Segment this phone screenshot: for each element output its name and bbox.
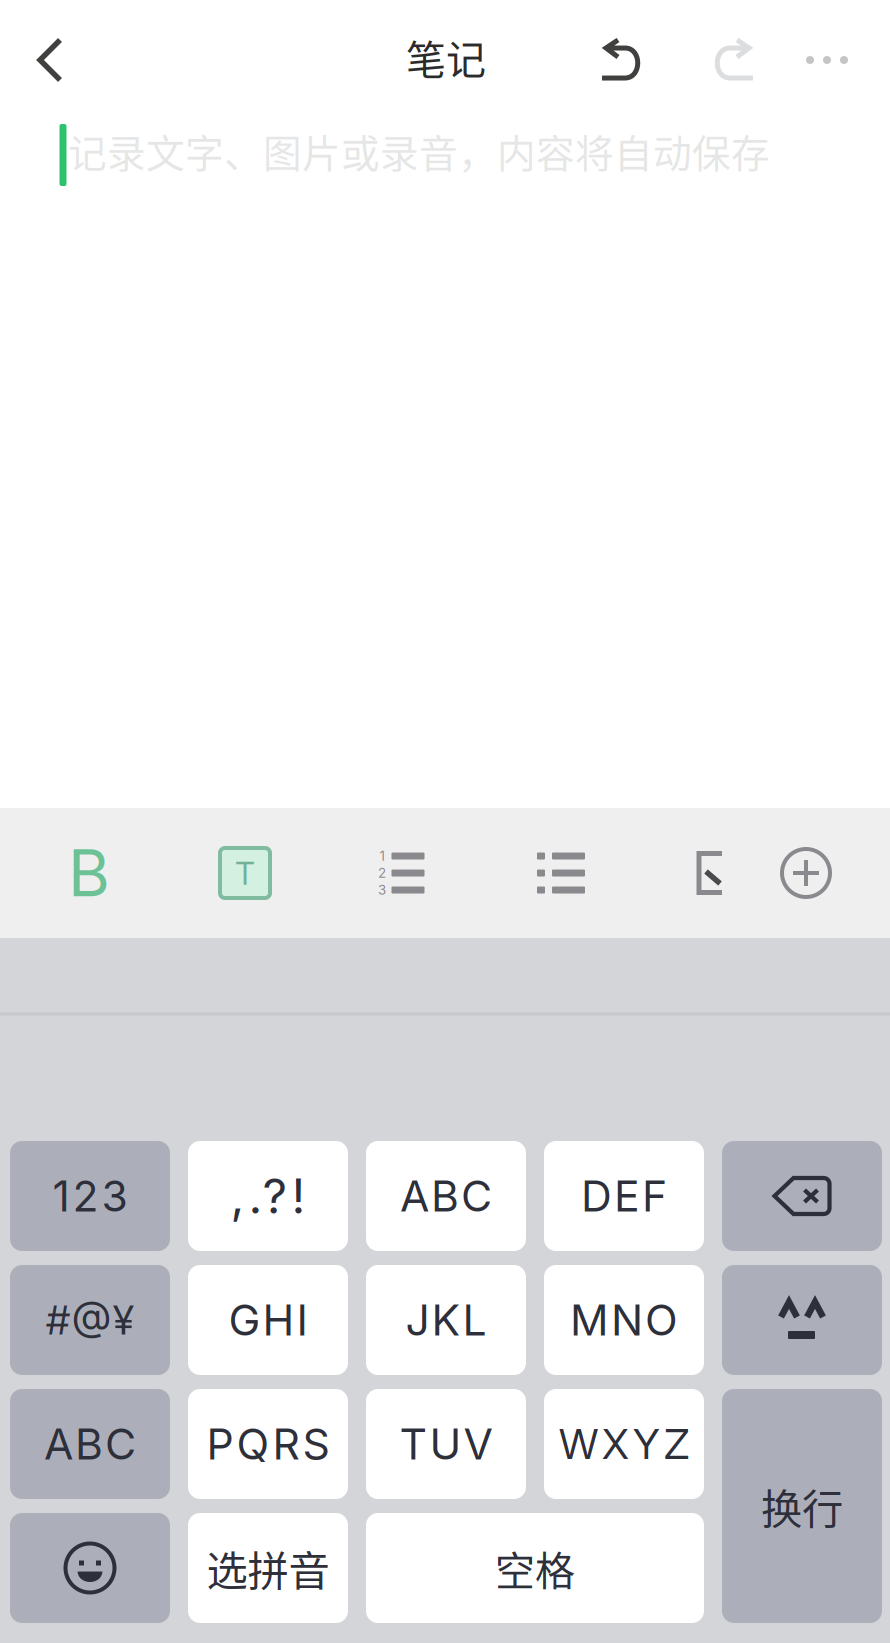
button[interactable]: ,.?! [188, 1141, 348, 1251]
staticText: 换行 [761, 1476, 843, 1536]
staticText: 123 [52, 1170, 127, 1222]
staticText: 空格 [495, 1539, 575, 1597]
staticText: ,.?! [230, 1167, 305, 1225]
button[interactable]: Redo [687, 5, 779, 115]
staticText: T [235, 854, 255, 892]
staticText: 记录文字、图片或录音，内容将自动保存 [68, 123, 770, 179]
button[interactable]: JKL [366, 1265, 526, 1375]
button[interactable]: 换行 [722, 1389, 882, 1623]
staticText: TUV [399, 1418, 492, 1470]
staticText: JKL [405, 1294, 486, 1346]
staticText: #@¥ [46, 1296, 134, 1344]
staticText: ABC [44, 1418, 136, 1470]
button[interactable]: Insert [764, 808, 848, 938]
staticText: PQRS [206, 1418, 329, 1470]
staticText: WXYZ [559, 1419, 689, 1469]
button[interactable]: More options [781, 5, 873, 115]
staticText: B [68, 834, 110, 912]
button[interactable]: MNO [544, 1265, 704, 1375]
button[interactable]: Bold [47, 808, 131, 938]
button[interactable]: 选拼音 [188, 1513, 348, 1623]
button[interactable]: DEF [544, 1141, 704, 1251]
button[interactable] [722, 1141, 882, 1251]
staticText: ABC [400, 1170, 492, 1222]
button[interactable]: Back [0, 5, 100, 115]
button[interactable]: 123 [10, 1141, 170, 1251]
button[interactable]: 空格 [366, 1513, 704, 1623]
button[interactable]: GHI [188, 1265, 348, 1375]
staticText: GHI [228, 1294, 307, 1346]
staticText: 选拼音 [206, 1538, 329, 1598]
button[interactable]: Undo [576, 5, 668, 115]
button[interactable]: #@¥ [10, 1265, 170, 1375]
staticText: 1 [379, 848, 384, 864]
button[interactable]: ABC [10, 1389, 170, 1499]
button[interactable]: Handwriting [668, 808, 752, 938]
button[interactable]: Bulleted list [519, 808, 603, 938]
button[interactable]: PQRS [188, 1389, 348, 1499]
staticText: 笔记 [406, 28, 486, 86]
staticText: DEF [581, 1170, 667, 1222]
button[interactable]: Text style [203, 808, 287, 938]
button[interactable] [722, 1265, 882, 1375]
button[interactable]: TUV [366, 1389, 526, 1499]
button[interactable]: ABC [366, 1141, 526, 1251]
button[interactable] [10, 1513, 170, 1623]
button[interactable]: Numbered list [359, 808, 443, 938]
staticText: 3 [378, 882, 386, 898]
staticText: 2 [378, 865, 386, 881]
button[interactable]: WXYZ [544, 1389, 704, 1499]
staticText: MNO [570, 1294, 678, 1346]
